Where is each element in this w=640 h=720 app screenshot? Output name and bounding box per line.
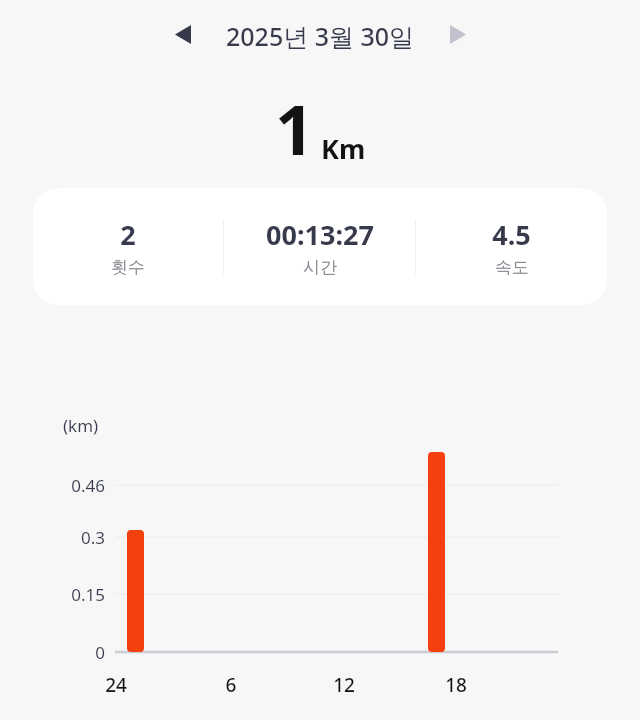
button[interactable]: 2025년 3월 30일 bbox=[216, 17, 425, 55]
staticText: 6 bbox=[201, 672, 261, 698]
staticText: 0.15 bbox=[25, 583, 105, 606]
button[interactable]: 이전 날짜 bbox=[163, 14, 203, 54]
staticText: 18 bbox=[426, 672, 486, 698]
staticText: 0 bbox=[25, 641, 105, 664]
button[interactable]: 2 bbox=[33, 216, 223, 278]
staticText: 시간 bbox=[303, 257, 337, 278]
staticText: 4.5 bbox=[492, 216, 531, 253]
staticText: 2025년 3월 30일 bbox=[226, 19, 415, 53]
staticText: 24 bbox=[86, 672, 146, 698]
button[interactable]: 다음 날짜 bbox=[438, 14, 478, 54]
button[interactable]: 2 bbox=[33, 188, 607, 305]
staticText: 횟수 bbox=[111, 257, 145, 278]
staticText: (km) bbox=[63, 414, 99, 437]
staticText: 1 bbox=[275, 82, 314, 175]
staticText: Km bbox=[321, 130, 366, 167]
staticText: 12 bbox=[314, 672, 374, 698]
staticText: 0.3 bbox=[25, 526, 105, 549]
staticText: 00:13:27 bbox=[266, 216, 374, 253]
button[interactable]: 00:13:27 bbox=[224, 216, 415, 278]
staticText: 2 bbox=[120, 216, 136, 253]
staticText: 속도 bbox=[495, 257, 529, 278]
staticText: 0.46 bbox=[25, 474, 105, 497]
button[interactable]: 4.5 bbox=[416, 216, 607, 278]
